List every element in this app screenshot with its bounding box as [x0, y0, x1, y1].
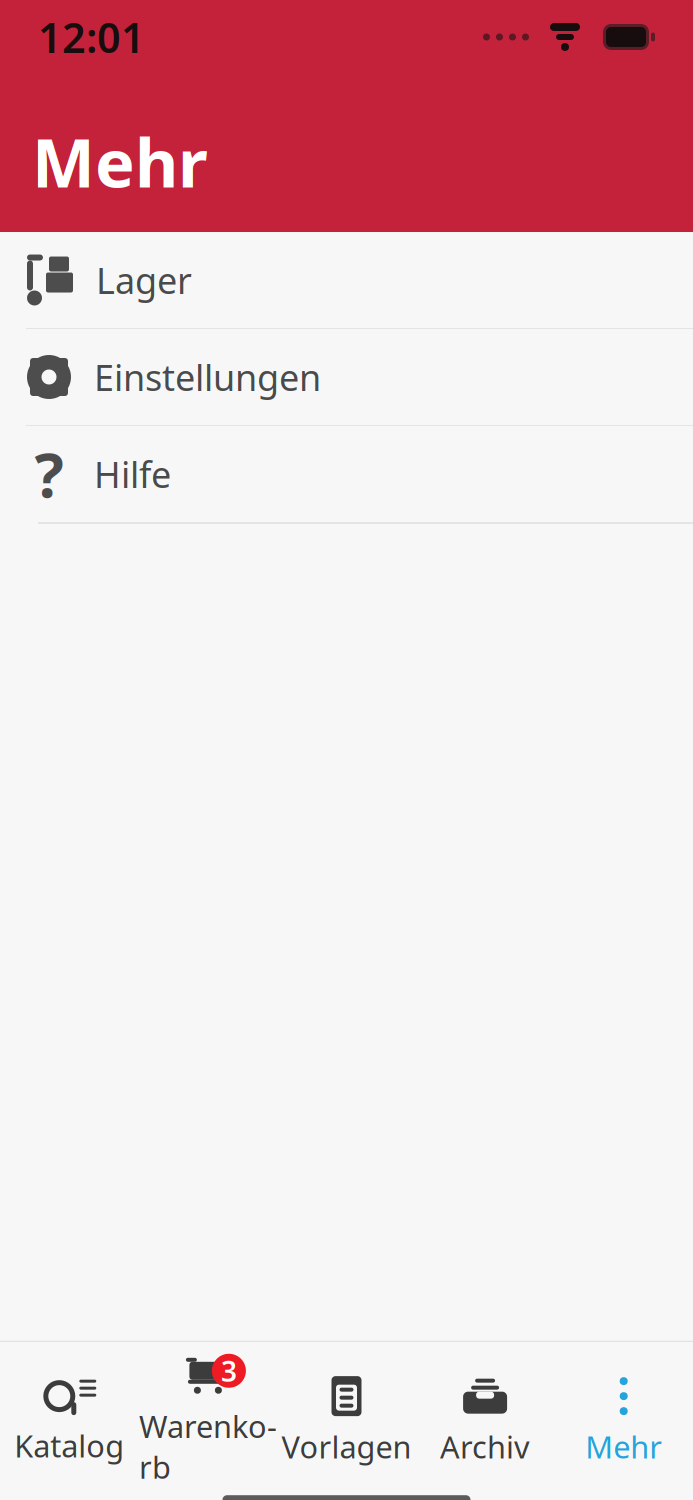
staticText: Einstellungen	[94, 353, 321, 401]
staticText: Lager	[96, 256, 192, 304]
button[interactable]: Archiv	[416, 1362, 554, 1467]
staticText: ?	[34, 433, 63, 515]
button[interactable]: ?	[0, 426, 693, 524]
staticText: Katalog	[14, 1425, 124, 1466]
button[interactable]: Einstellungen	[0, 329, 693, 426]
staticText: Warenkorb	[139, 1406, 277, 1487]
button[interactable]: Vorlagen	[277, 1362, 416, 1467]
staticText: 12:01	[38, 10, 145, 64]
staticText: Mehr	[585, 1426, 662, 1467]
staticText: 3	[221, 1352, 237, 1389]
button[interactable]: Katalog	[0, 1363, 139, 1466]
staticText: Vorlagen	[281, 1426, 411, 1467]
button[interactable]: Mehr	[554, 1362, 693, 1467]
button[interactable]: 3	[139, 1342, 277, 1487]
staticText: Archiv	[440, 1426, 530, 1467]
staticText: Mehr	[32, 117, 208, 206]
button[interactable]: Lager	[0, 232, 693, 329]
staticText: Hilfe	[94, 450, 171, 498]
